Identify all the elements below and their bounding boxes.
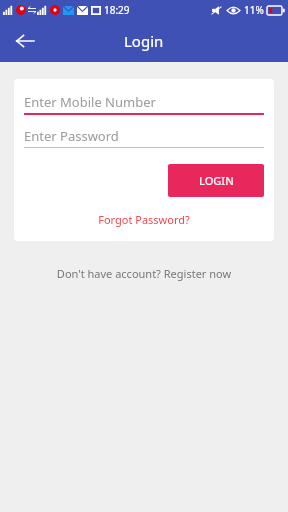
staticText: 18:29 xyxy=(104,3,130,17)
staticText: Enter Mobile Number xyxy=(24,93,156,111)
button[interactable]: LOGIN xyxy=(168,164,264,197)
staticText: Login xyxy=(124,31,164,51)
button[interactable]: Enter Password xyxy=(24,124,264,148)
button[interactable]: Forgot Password? xyxy=(24,210,264,229)
button[interactable]: Don't have account? Register now xyxy=(0,263,288,284)
staticText: LOGIN xyxy=(199,173,234,188)
button[interactable]: Back xyxy=(9,25,41,57)
staticText: Enter Password xyxy=(24,127,119,145)
staticText: 11% xyxy=(244,3,264,17)
button[interactable]: Enter Mobile Number xyxy=(24,90,264,115)
